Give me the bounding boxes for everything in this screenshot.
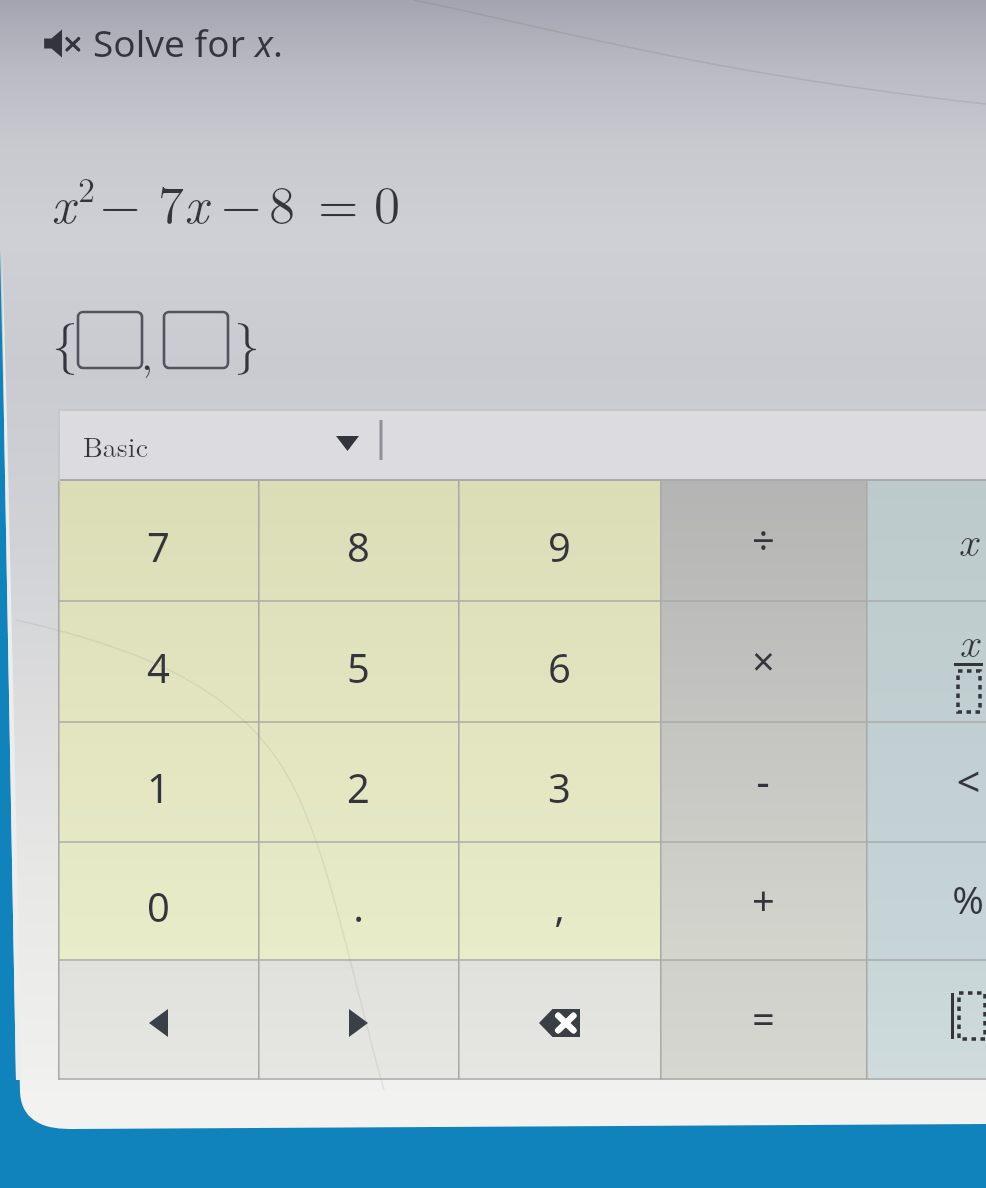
button[interactable]: 0 (58, 843, 258, 961)
button[interactable]: = (660, 961, 866, 1080)
staticText: x (184, 164, 209, 238)
staticText: Basic (83, 425, 149, 465)
staticText: 5 (347, 640, 370, 694)
staticText: − (100, 164, 141, 238)
button[interactable]: 1 (58, 723, 258, 843)
button[interactable]: Mute audio (43, 17, 283, 70)
staticText: × (752, 633, 775, 687)
staticText: Solve for (93, 17, 255, 67)
staticText: 0 (147, 879, 170, 933)
button[interactable]: 8 (258, 481, 458, 602)
staticText: { (52, 303, 79, 377)
button[interactable]: x (866, 602, 986, 723)
staticText: x (255, 17, 273, 67)
staticText: 8 (269, 164, 296, 238)
button[interactable]: < (866, 723, 986, 843)
button[interactable]: , (458, 843, 660, 961)
button[interactable]: 2 (258, 723, 458, 843)
staticText: 7 (147, 519, 170, 573)
staticText: x (51, 164, 76, 238)
button[interactable]: Basic (58, 409, 986, 481)
staticText: % (952, 873, 984, 925)
button[interactable]: Mute audio (43, 29, 81, 58)
button[interactable]: Answer field (78, 312, 142, 368)
staticText: . (353, 879, 364, 933)
staticText: x (959, 610, 979, 669)
staticText: , (141, 320, 154, 382)
button[interactable]: × (660, 602, 866, 723)
button[interactable]: + (660, 843, 866, 961)
button[interactable]: 3 (458, 723, 660, 843)
button[interactable]: 5 (258, 602, 458, 723)
staticText: - (756, 752, 770, 809)
staticText: = (752, 991, 775, 1045)
staticText: − (221, 164, 262, 238)
staticText: 2 (78, 164, 95, 212)
staticText: 1 (147, 760, 170, 814)
button[interactable]: 7 (58, 481, 258, 602)
staticText: < (956, 752, 981, 809)
button[interactable]: - (660, 723, 866, 843)
button[interactable]: ÷ (660, 481, 866, 602)
staticText: x (958, 509, 978, 568)
staticText: . (273, 17, 283, 67)
staticText: = (318, 164, 359, 238)
staticText: 3 (548, 760, 571, 814)
button[interactable]: % (866, 843, 986, 961)
button[interactable]: 9 (458, 481, 660, 602)
button[interactable] (58, 961, 258, 1080)
staticText: 0 (374, 164, 401, 238)
staticText: , (554, 879, 565, 933)
button[interactable]: x (866, 481, 986, 602)
staticText: ÷ (752, 512, 775, 566)
staticText: 7 (158, 164, 185, 238)
staticText: 6 (548, 640, 571, 694)
staticText: 9 (548, 519, 571, 573)
staticText: 4 (147, 640, 170, 694)
staticText: + (752, 872, 775, 926)
button[interactable] (458, 961, 660, 1080)
staticText: } (234, 303, 261, 377)
button[interactable] (258, 961, 458, 1080)
button[interactable]: Answer field (164, 312, 228, 368)
button[interactable]: 6 (458, 602, 660, 723)
button[interactable]: 4 (58, 602, 258, 723)
staticText: 2 (347, 760, 370, 814)
button[interactable] (866, 961, 986, 1080)
staticText: 8 (347, 519, 370, 573)
button[interactable]: . (258, 843, 458, 961)
